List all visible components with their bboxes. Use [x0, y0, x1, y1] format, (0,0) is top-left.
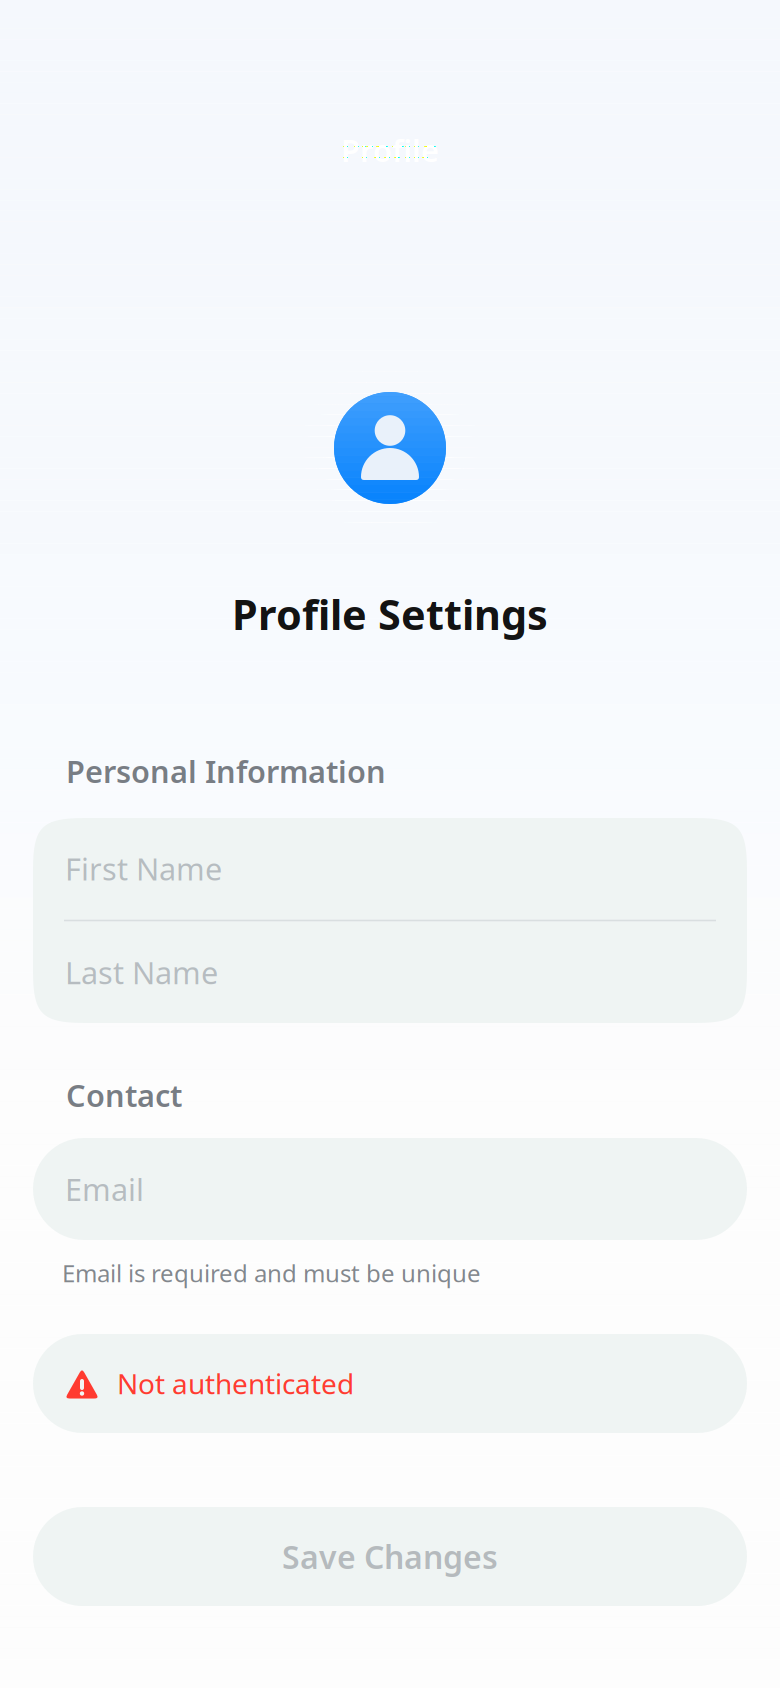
staticText: Personal Information — [66, 751, 386, 791]
button[interactable]: Last Name — [33, 921, 747, 1023]
staticText: First Name — [65, 848, 222, 889]
staticText: Profile — [341, 130, 439, 170]
staticText: Last Name — [65, 952, 218, 993]
staticText: Contact — [66, 1075, 182, 1115]
button[interactable]: Save Changes — [33, 1507, 747, 1606]
staticText: Email is required and must be unique — [62, 1257, 481, 1289]
staticText: Save Changes — [282, 1535, 498, 1578]
button[interactable]: Email — [33, 1138, 747, 1240]
staticText: Profile Settings — [232, 587, 548, 641]
button[interactable]: First Name — [33, 818, 747, 920]
staticText: Not authenticated — [117, 1365, 354, 1402]
staticText: Email — [65, 1169, 144, 1209]
